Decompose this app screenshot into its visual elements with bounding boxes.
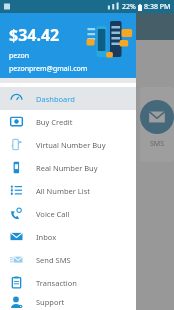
- staticText: Real Number Buy: [36, 163, 98, 173]
- staticText: All Number List: [36, 186, 91, 196]
- staticText: Transaction: [36, 278, 77, 288]
- staticText: Dashboard: [36, 94, 75, 104]
- button[interactable]: All Number List: [0, 179, 136, 202]
- staticText: pezon: [9, 51, 30, 61]
- button[interactable]: Transaction: [0, 271, 136, 294]
- staticText: pezonprem@gmail.com: [9, 64, 88, 74]
- staticText: Voice Call: [36, 209, 70, 219]
- staticText: Support: [36, 297, 65, 307]
- staticText: 8:38 PM: [144, 2, 171, 12]
- button[interactable]: Buy Credit: [0, 110, 136, 133]
- staticText: Virtual Number Buy: [36, 140, 106, 150]
- button[interactable]: Inbox: [0, 225, 136, 248]
- staticText: SMS: [150, 139, 165, 149]
- button[interactable]: Send SMS: [0, 248, 136, 271]
- button[interactable]: Support: [0, 294, 136, 310]
- button[interactable]: Real Number Buy: [0, 156, 136, 179]
- staticText: $34.42: [9, 24, 60, 46]
- staticText: 22%: [122, 2, 136, 12]
- staticText: 8:38 PM: [144, 2, 171, 12]
- staticText: Buy Credit: [36, 117, 73, 127]
- button[interactable]: Voice Call: [0, 202, 136, 225]
- staticText: Inbox: [36, 232, 57, 242]
- staticText: Send SMS: [36, 255, 71, 265]
- staticText: 22%: [122, 2, 136, 12]
- button[interactable]: Dashboard: [0, 87, 136, 110]
- button[interactable]: Virtual Number Buy: [0, 133, 136, 156]
